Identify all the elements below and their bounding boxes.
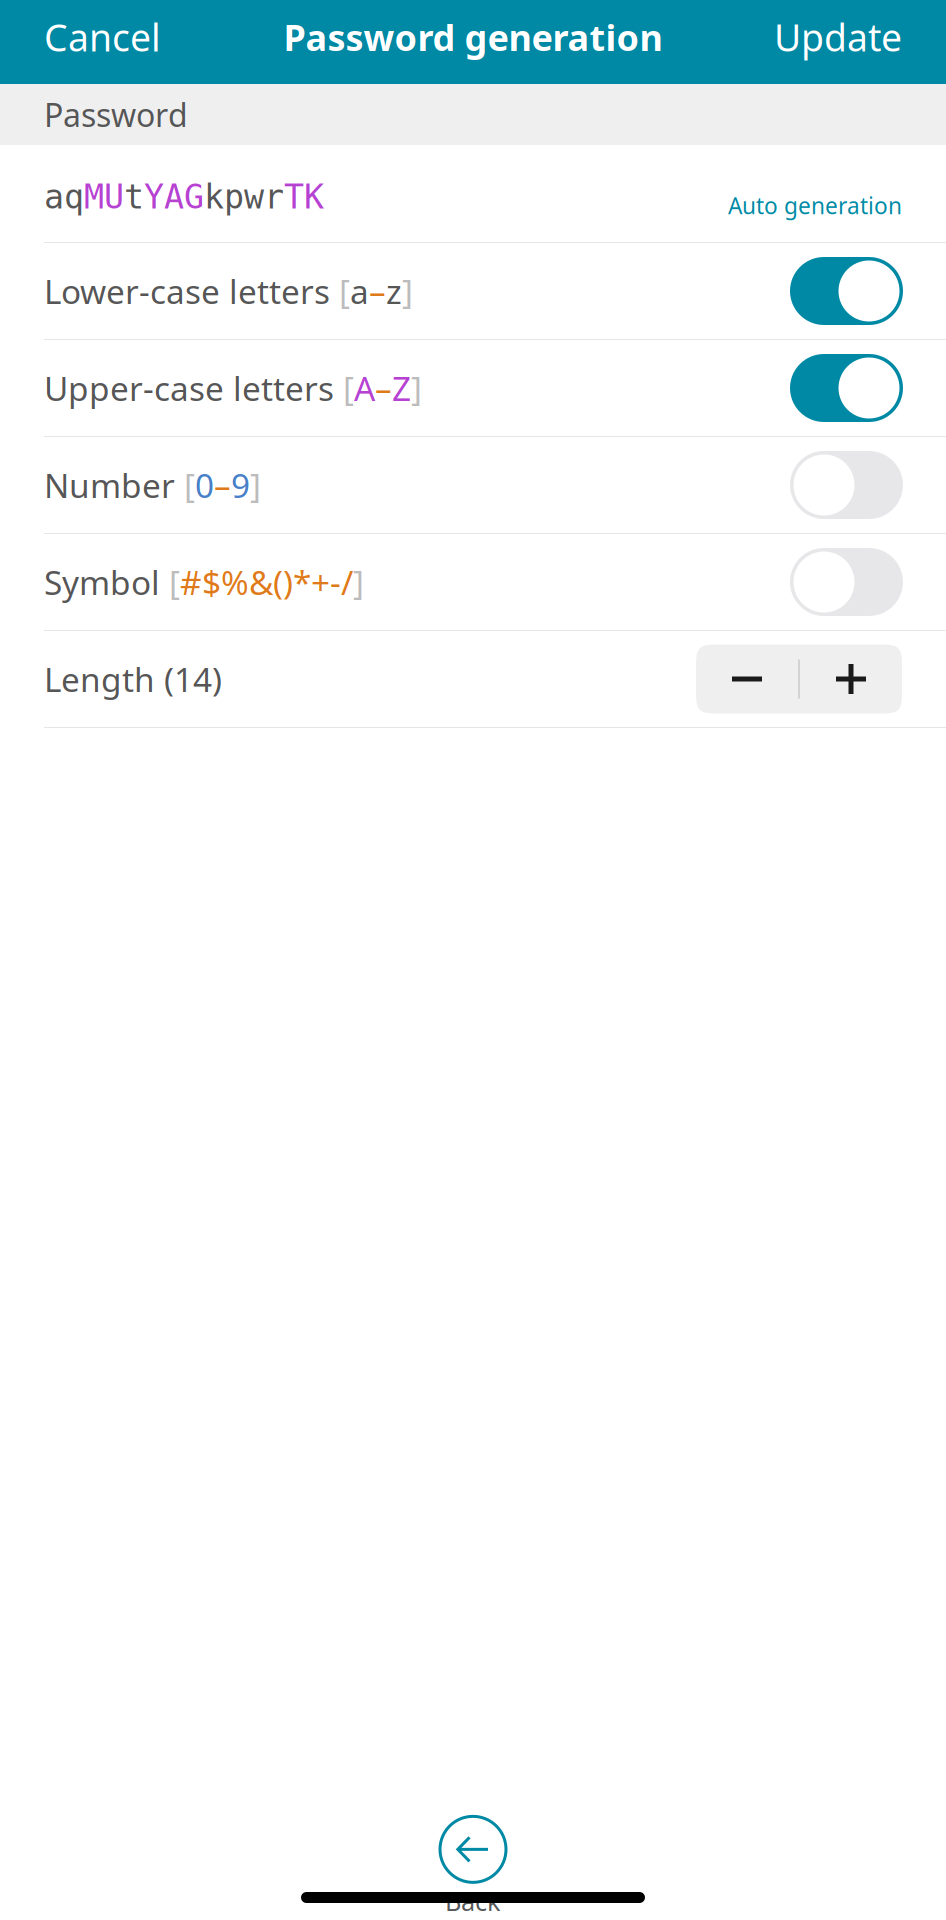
staticText: Z <box>392 366 411 410</box>
button[interactable]: Symbol <box>0 534 946 630</box>
staticText: Cancel <box>44 12 161 62</box>
staticText: Back <box>445 1884 501 1918</box>
staticText: Update <box>774 12 902 62</box>
staticText: MU <box>84 178 124 216</box>
staticText: Auto generation <box>728 190 902 220</box>
staticText: – <box>369 269 386 313</box>
button[interactable]: Upper-case letters <box>0 340 946 436</box>
staticText: kpwr <box>204 178 284 216</box>
staticText: Password <box>44 93 188 136</box>
staticText: z <box>386 269 402 313</box>
staticText: t <box>124 178 144 216</box>
staticText: 0 <box>195 463 214 507</box>
staticText: ] <box>402 269 413 313</box>
staticText: aq <box>44 178 84 216</box>
button[interactable]: Lower-case letters <box>0 243 946 339</box>
staticText: ] <box>411 366 422 410</box>
staticText: – <box>214 463 231 507</box>
staticText: Lower-case letters <box>44 269 330 313</box>
staticText: a <box>350 269 369 313</box>
button[interactable]: Decrease length <box>696 644 798 713</box>
staticText: [ <box>184 463 195 507</box>
staticText: A <box>354 366 375 410</box>
button[interactable]: Cancel <box>44 0 161 74</box>
staticText: Length (14) <box>44 657 222 701</box>
staticText: TK <box>284 178 324 216</box>
button[interactable]: Number <box>0 437 946 533</box>
staticText: [ <box>169 560 180 604</box>
staticText: Upper-case letters <box>44 366 334 410</box>
staticText: #$%&()*+-/ <box>180 560 353 604</box>
staticText: 9 <box>231 463 250 507</box>
button[interactable]: Back <box>440 1816 506 1918</box>
staticText: – <box>375 366 392 410</box>
staticText: [ <box>343 366 354 410</box>
staticText: Number <box>44 463 175 507</box>
button[interactable]: Update <box>774 0 902 74</box>
staticText: [ <box>339 269 350 313</box>
staticText: Symbol <box>44 560 160 604</box>
staticText: Password generation <box>283 13 662 61</box>
staticText: ] <box>353 560 364 604</box>
staticText: ] <box>250 463 261 507</box>
button[interactable]: aq <box>0 145 946 242</box>
staticText: YAG <box>144 178 204 216</box>
button[interactable]: Increase length <box>800 644 902 713</box>
